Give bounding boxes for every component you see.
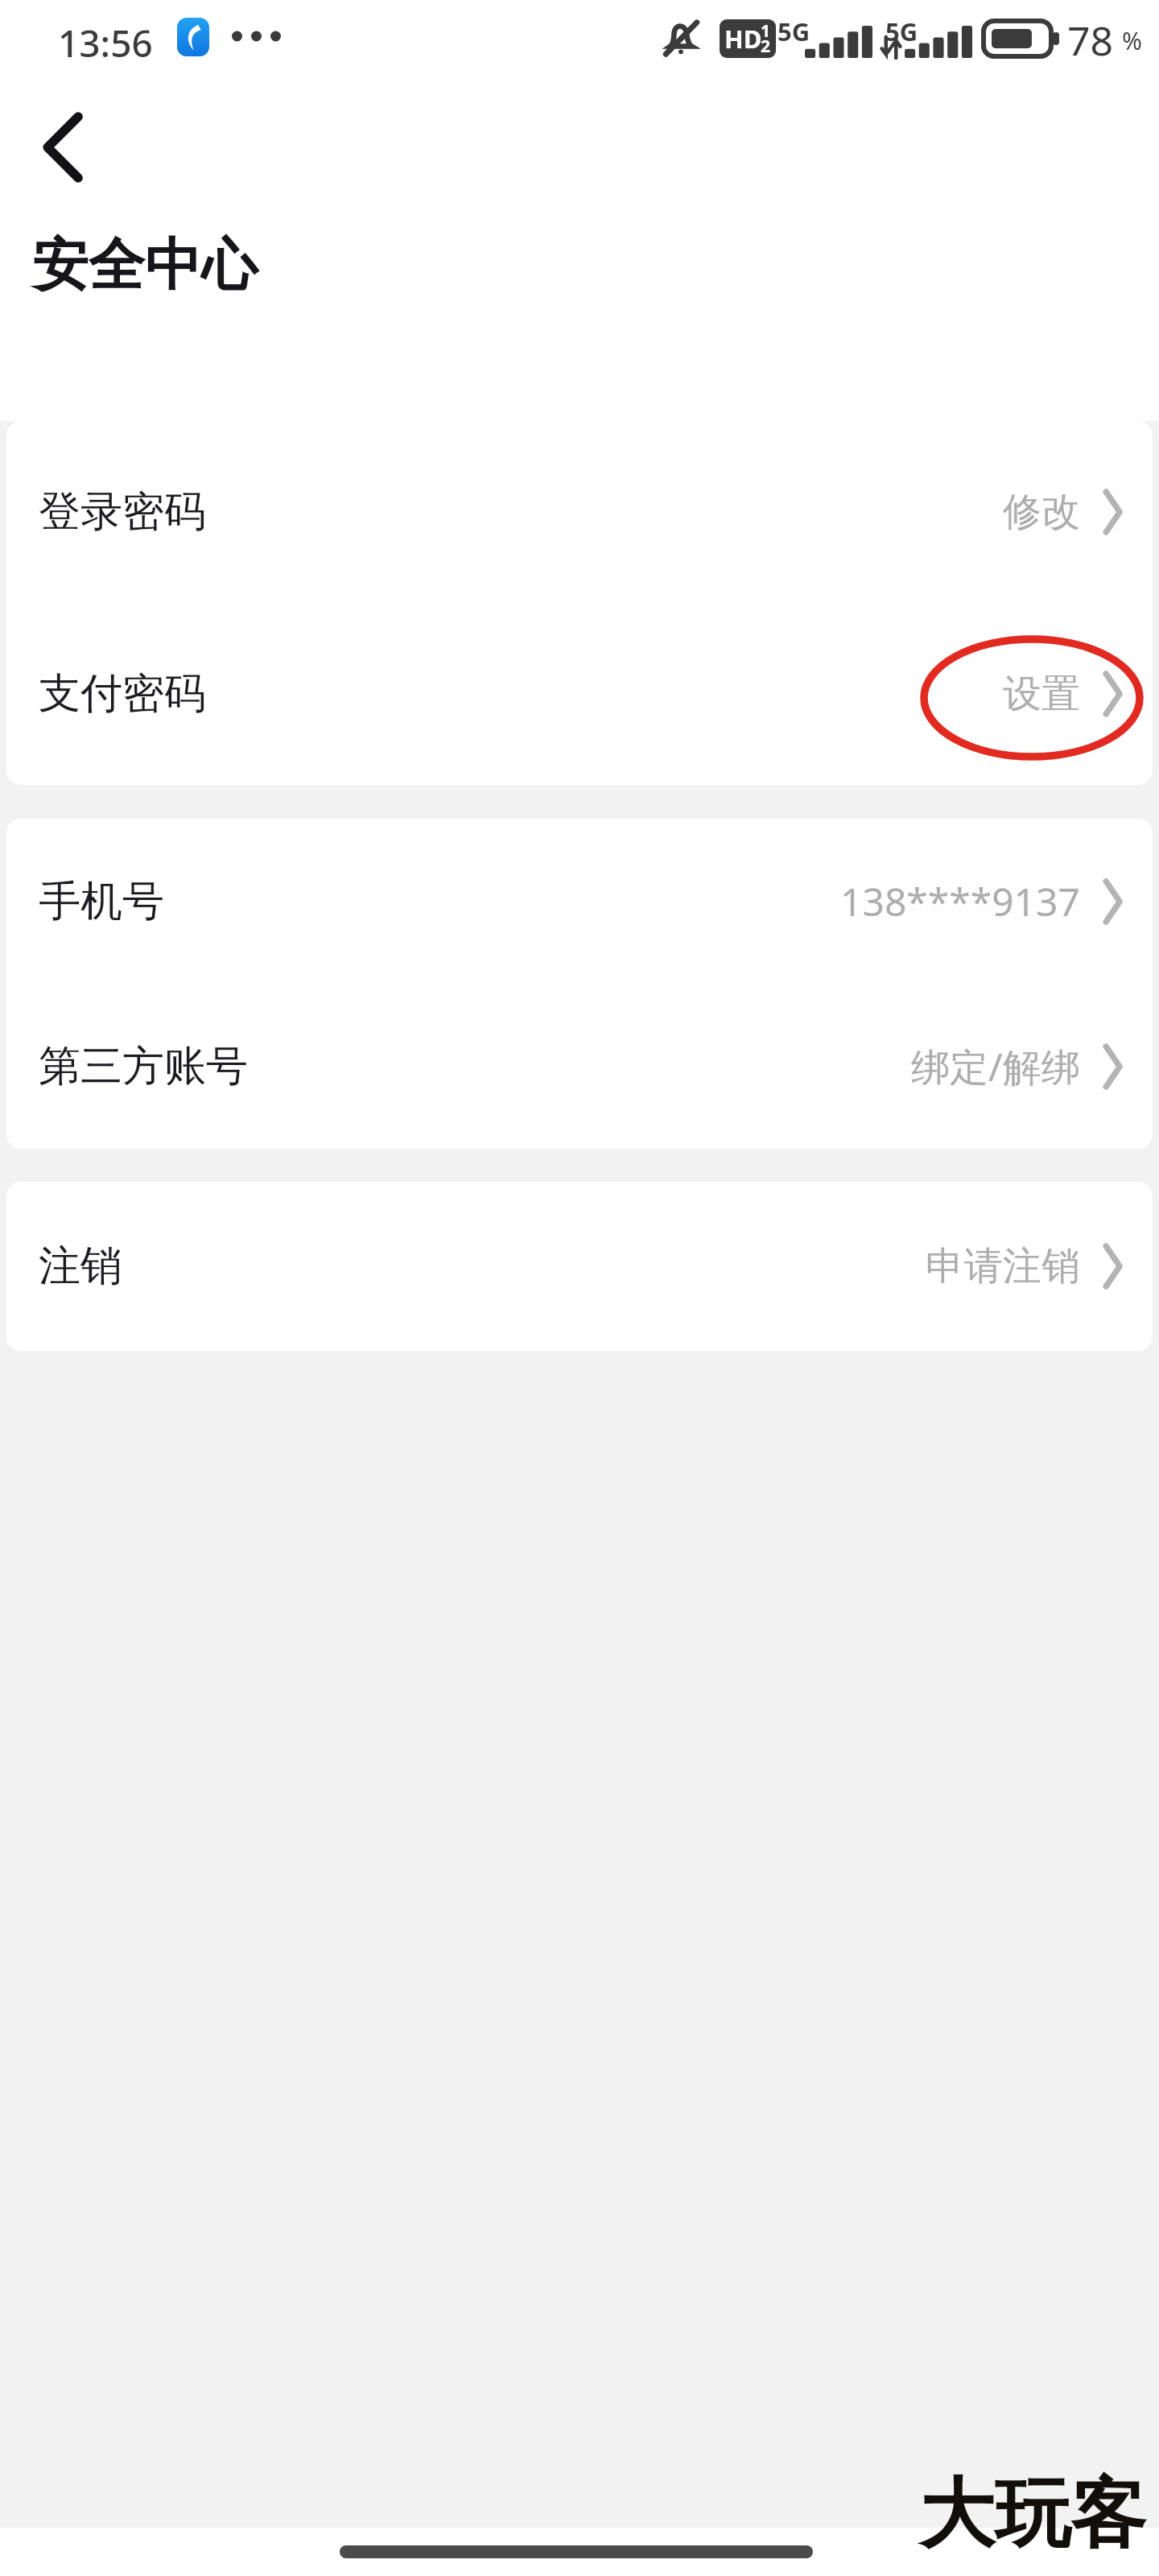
- button[interactable]: 手机号: [6, 819, 1153, 984]
- button[interactable]: 登录密码: [6, 421, 1153, 603]
- button[interactable]: 支付密码: [6, 603, 1153, 785]
- button[interactable]: 注销: [6, 1182, 1153, 1351]
- staticText: 78: [1067, 13, 1114, 68]
- staticText: 绑定/解绑: [911, 1040, 1080, 1093]
- staticText: %: [1122, 24, 1142, 57]
- staticText: 支付密码: [39, 667, 206, 720]
- staticText: 5G: [885, 14, 918, 48]
- staticText: 申请注销: [926, 1242, 1080, 1290]
- staticText: 手机号: [39, 875, 164, 928]
- staticText: 修改: [1003, 488, 1080, 536]
- staticText: 设置: [1003, 670, 1080, 718]
- staticText: 安全中心: [32, 230, 258, 301]
- staticText: 注销: [39, 1240, 122, 1293]
- staticText: 大玩客: [919, 2467, 1146, 2562]
- staticText: 第三方账号: [39, 1040, 248, 1093]
- button[interactable]: 第三方账号: [6, 984, 1153, 1149]
- staticText: 138****9137: [840, 875, 1080, 927]
- button[interactable]: Back: [8, 101, 100, 193]
- staticText: 2: [761, 35, 771, 58]
- staticText: 13:56: [58, 18, 153, 68]
- staticText: 登录密码: [39, 485, 206, 539]
- staticText: HD: [724, 22, 762, 56]
- staticText: 1: [761, 19, 771, 43]
- staticText: 5G: [777, 14, 810, 48]
